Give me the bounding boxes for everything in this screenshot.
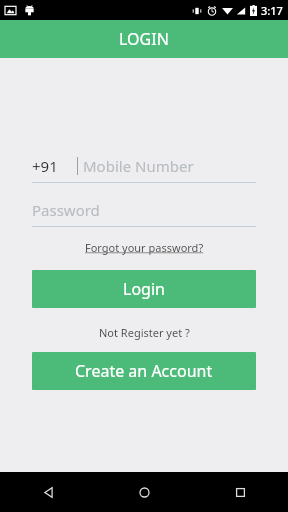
button[interactable]: Recent apps xyxy=(192,472,288,512)
staticText: Not Register yet ? xyxy=(99,325,190,340)
button[interactable]: Login xyxy=(32,270,256,308)
button[interactable]: Password xyxy=(32,194,256,226)
staticText: 3:17 xyxy=(261,3,283,18)
staticText: Password xyxy=(32,200,100,220)
button[interactable]: Home xyxy=(96,472,192,512)
staticText: Forgot your password? xyxy=(85,240,204,255)
button[interactable]: Create an Account xyxy=(32,352,256,390)
button[interactable]: +91 xyxy=(32,150,256,182)
staticText: Create an Account xyxy=(75,360,213,382)
button[interactable]: Not Register yet ? xyxy=(93,323,196,342)
button[interactable]: Back xyxy=(0,472,96,512)
staticText: LOGIN xyxy=(119,28,169,50)
staticText: Mobile Number xyxy=(83,156,194,176)
staticText: +91 xyxy=(32,156,58,176)
staticText: Login xyxy=(123,278,165,300)
button[interactable]: Forgot your password? xyxy=(79,238,210,257)
